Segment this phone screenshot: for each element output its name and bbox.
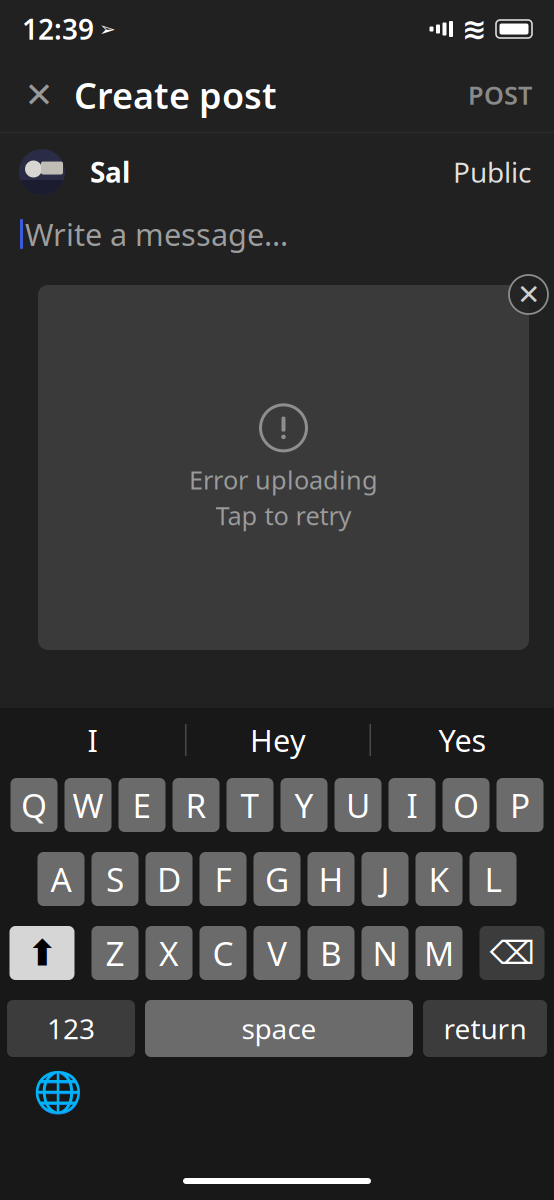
button[interactable]: Profile photo: [19, 149, 65, 195]
button[interactable]: B: [307, 926, 354, 980]
staticText: C: [212, 931, 233, 975]
button[interactable]: L: [469, 852, 516, 906]
staticText: E: [132, 783, 151, 827]
staticText: ≋: [462, 12, 487, 46]
staticText: Error uploading: [189, 463, 378, 496]
button[interactable]: Public: [449, 152, 535, 192]
staticText: Y: [294, 783, 313, 827]
button[interactable]: S: [91, 852, 138, 906]
staticText: T: [240, 783, 259, 827]
button[interactable]: F: [199, 852, 246, 906]
button[interactable]: Switch keyboard: [32, 1066, 84, 1118]
staticText: 12:39: [22, 10, 94, 48]
button[interactable]: Hey: [186, 711, 369, 769]
staticText: ➢: [99, 18, 116, 40]
button[interactable]: G: [253, 852, 300, 906]
staticText: L: [484, 857, 501, 901]
staticText: D: [157, 857, 181, 901]
staticText: Q: [21, 783, 47, 827]
button[interactable]: R: [172, 778, 219, 832]
button[interactable]: Delete: [479, 926, 544, 980]
staticText: POST: [468, 78, 532, 112]
staticText: U: [346, 783, 370, 827]
button[interactable]: U: [334, 778, 381, 832]
button[interactable]: Yes: [371, 711, 554, 769]
button[interactable]: POST: [462, 72, 538, 118]
button[interactable]: X: [145, 926, 192, 980]
staticText: 🌐: [33, 1069, 83, 1115]
staticText: Tap to retry: [215, 498, 351, 532]
button[interactable]: Y: [280, 778, 327, 832]
staticText: V: [267, 931, 287, 975]
button[interactable]: space: [145, 1000, 413, 1057]
staticText: P: [510, 783, 530, 827]
staticText: Write a message...: [25, 214, 288, 254]
staticText: M: [424, 931, 454, 975]
button[interactable]: Q: [10, 778, 57, 832]
staticText: J: [380, 857, 389, 901]
button[interactable]: W: [64, 778, 111, 832]
staticText: ⬆: [27, 933, 57, 973]
staticText: A: [50, 857, 71, 901]
staticText: R: [185, 783, 206, 827]
staticText: W: [72, 783, 103, 827]
staticText: H: [318, 857, 343, 901]
button[interactable]: T: [226, 778, 273, 832]
button[interactable]: H: [307, 852, 354, 906]
staticText: ⌫: [489, 935, 534, 971]
staticText: F: [214, 857, 231, 901]
button[interactable]: return: [423, 1000, 547, 1057]
staticText: B: [320, 931, 342, 975]
button[interactable]: Remove attachment: [509, 275, 548, 314]
staticText: Sal: [90, 153, 130, 191]
button[interactable]: C: [199, 926, 246, 980]
button[interactable]: Shift: [9, 926, 74, 980]
button[interactable]: O: [442, 778, 489, 832]
staticText: Public: [453, 153, 531, 191]
staticText: Hey: [250, 720, 306, 760]
button[interactable]: P: [496, 778, 543, 832]
button[interactable]: M: [415, 926, 462, 980]
staticText: S: [106, 857, 124, 901]
button[interactable]: V: [253, 926, 300, 980]
button[interactable]: D: [145, 852, 192, 906]
button[interactable]: I: [388, 778, 435, 832]
button[interactable]: J: [361, 852, 408, 906]
button[interactable]: Close: [16, 72, 62, 118]
staticText: X: [159, 931, 179, 975]
staticText: I: [406, 783, 417, 827]
staticText: Z: [105, 931, 124, 975]
button[interactable]: Error uploading: [38, 285, 529, 650]
staticText: space: [241, 1010, 316, 1047]
staticText: O: [453, 783, 479, 827]
staticText: G: [265, 857, 289, 901]
staticText: I: [87, 720, 97, 760]
button[interactable]: 123: [7, 1000, 135, 1057]
staticText: 123: [47, 1010, 95, 1047]
button[interactable]: I: [0, 711, 185, 769]
staticText: ✕: [517, 279, 540, 310]
staticText: return: [443, 1010, 526, 1047]
button[interactable]: N: [361, 926, 408, 980]
staticText: N: [372, 931, 397, 975]
staticText: ✕: [24, 75, 53, 115]
staticText: K: [428, 857, 449, 901]
button[interactable]: K: [415, 852, 462, 906]
button[interactable]: A: [37, 852, 84, 906]
button[interactable]: E: [118, 778, 165, 832]
staticText: Create post: [74, 71, 277, 119]
button[interactable]: Z: [91, 926, 138, 980]
staticText: Yes: [438, 720, 486, 760]
